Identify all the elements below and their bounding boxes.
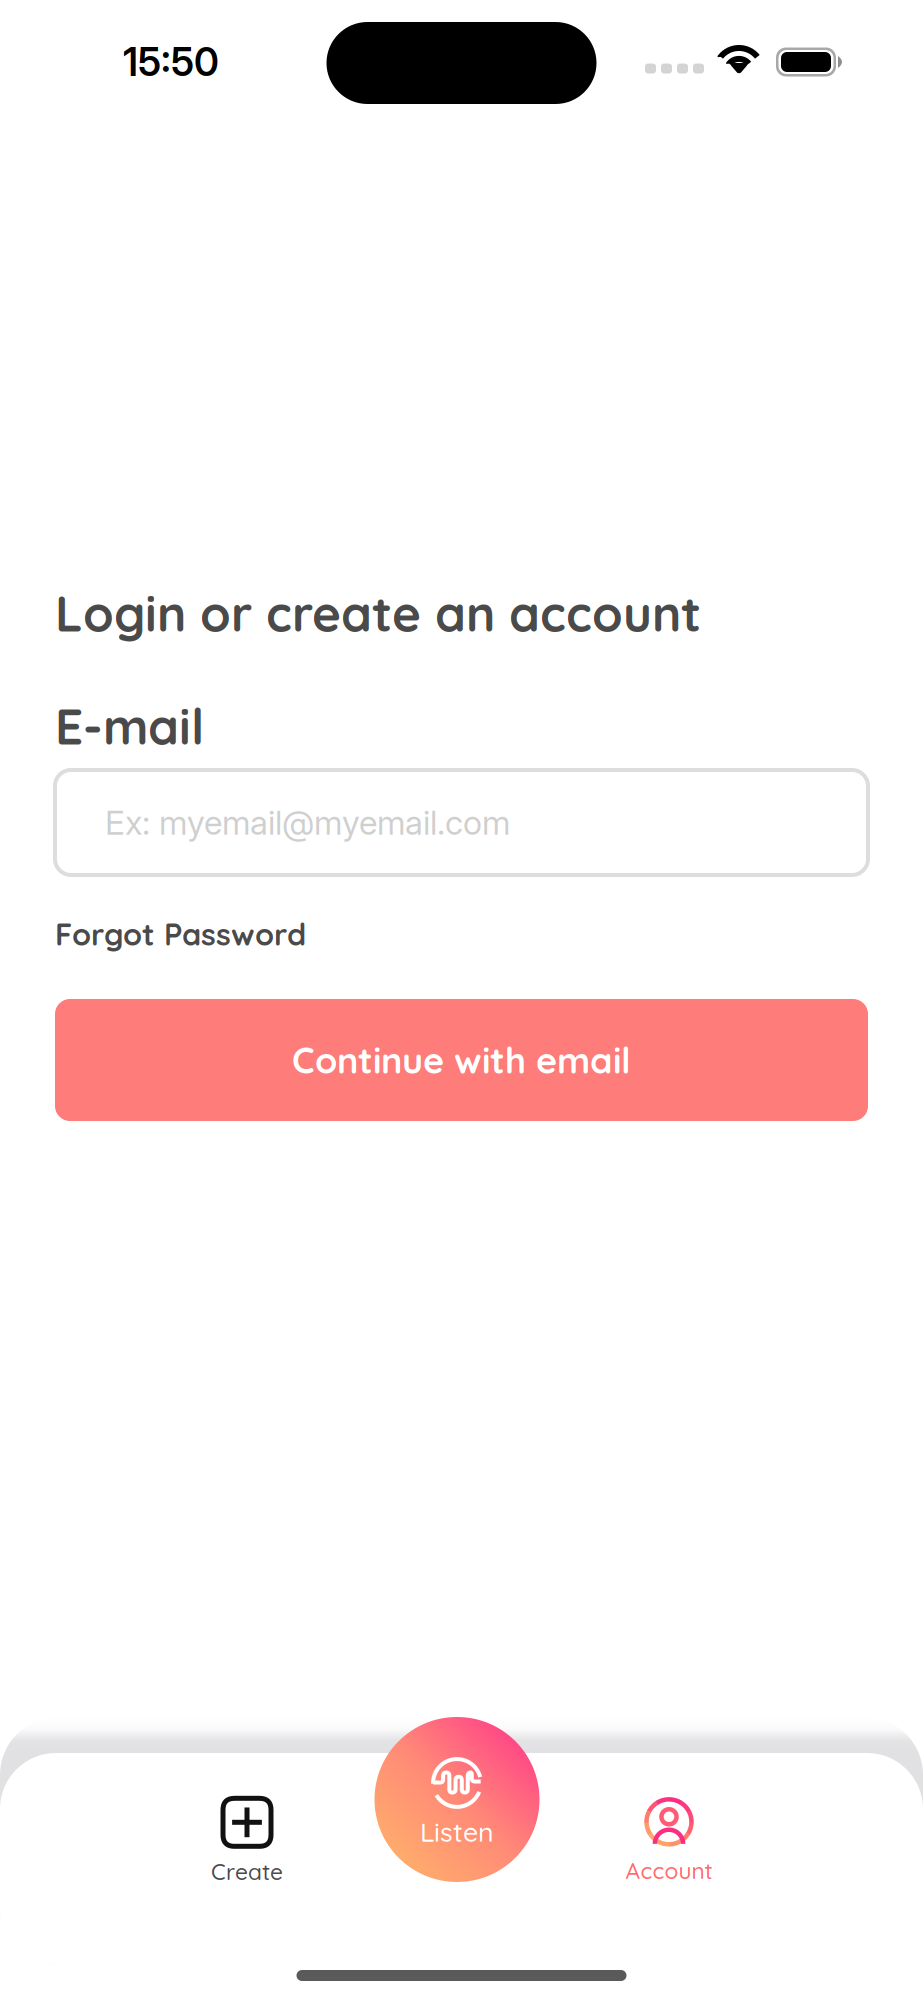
staticText: Create	[211, 1857, 283, 1886]
staticText: E-mail	[55, 695, 204, 757]
button[interactable]: Forgot Password	[55, 919, 868, 949]
staticText: Account	[625, 1856, 712, 1885]
button[interactable]: Account	[569, 1792, 769, 1892]
button[interactable]: Continue with email	[55, 999, 868, 1121]
staticText: Login or create an account	[55, 582, 701, 644]
staticText: Continue with email	[292, 1037, 631, 1082]
button[interactable]: Listen	[374, 1717, 539, 1882]
staticText: 15:50	[123, 39, 219, 85]
staticText: Forgot Password	[55, 915, 306, 953]
button[interactable]: Create	[147, 1792, 347, 1892]
staticText: Ex: myemail@myemail.com	[105, 802, 510, 843]
staticText: Listen	[420, 1815, 494, 1848]
